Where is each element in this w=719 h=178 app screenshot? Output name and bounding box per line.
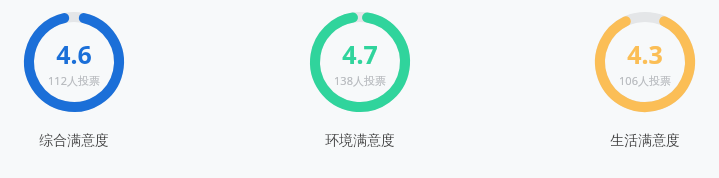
staticText: 综合满意度 <box>39 132 109 150</box>
staticText: 4.7 <box>342 37 378 71</box>
staticText: 4.6 <box>56 37 92 71</box>
staticText: 138人投票 <box>334 73 386 88</box>
button[interactable]: 综合满意度 4.6 分，112人投票 <box>24 12 124 150</box>
staticText: 112人投票 <box>48 73 100 88</box>
staticText: 环境满意度 <box>325 132 395 150</box>
button[interactable]: 生活满意度 4.3 分，106人投票 <box>595 12 695 150</box>
staticText: 106人投票 <box>619 73 671 88</box>
staticText: 生活满意度 <box>610 132 680 150</box>
button[interactable]: 环境满意度 4.7 分，138人投票 <box>310 12 410 150</box>
staticText: 4.3 <box>627 37 663 71</box>
